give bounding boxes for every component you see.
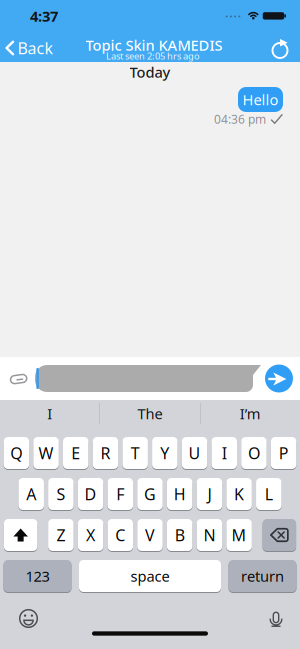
- button[interactable]: E: [63, 437, 88, 469]
- button[interactable]: O: [241, 437, 267, 469]
- button[interactable]: P: [271, 437, 296, 469]
- button[interactable]: space: [79, 560, 221, 592]
- staticText: I’m: [240, 404, 261, 423]
- button[interactable]: Z: [48, 519, 74, 551]
- staticText: Q: [10, 442, 22, 464]
- staticText: Back: [17, 37, 53, 59]
- staticText: K: [234, 483, 244, 505]
- button[interactable]: V: [137, 519, 163, 551]
- button[interactable]: I’m: [201, 400, 300, 426]
- button[interactable]: S: [48, 478, 74, 510]
- staticText: B: [175, 524, 185, 546]
- staticText: Z: [56, 524, 65, 546]
- staticText: A: [26, 483, 36, 505]
- button[interactable]: M: [226, 519, 252, 551]
- button[interactable]: T: [122, 437, 148, 469]
- staticText: N: [203, 524, 215, 546]
- button[interactable]: D: [78, 478, 103, 510]
- staticText: R: [100, 442, 110, 464]
- button[interactable]: W: [33, 437, 59, 469]
- staticText: Y: [160, 442, 169, 464]
- staticText: The: [137, 404, 162, 423]
- staticText: G: [144, 483, 156, 505]
- button[interactable]: I: [211, 437, 237, 469]
- button[interactable]: Emoji: [17, 607, 39, 629]
- staticText: P: [279, 442, 289, 464]
- button[interactable]: Q: [4, 437, 29, 469]
- staticText: L: [265, 483, 273, 505]
- staticText: I: [222, 442, 227, 464]
- button[interactable]: Send: [265, 364, 293, 392]
- staticText: S: [56, 483, 65, 505]
- button[interactable]: A: [18, 478, 44, 510]
- staticText: W: [38, 442, 53, 464]
- staticText: F: [116, 483, 124, 505]
- staticText: space: [130, 566, 169, 586]
- button[interactable]: Shift: [4, 519, 37, 551]
- staticText: H: [174, 483, 186, 505]
- button[interactable]: C: [108, 519, 133, 551]
- staticText: V: [145, 524, 155, 546]
- button[interactable]: J: [197, 478, 222, 510]
- button[interactable]: N: [197, 519, 222, 551]
- button[interactable]: B: [167, 519, 192, 551]
- staticText: Hello: [242, 90, 278, 109]
- button[interactable]: X: [78, 519, 103, 551]
- button[interactable]: Delete: [263, 519, 296, 551]
- button[interactable]: G: [137, 478, 163, 510]
- button[interactable]: The: [100, 400, 200, 426]
- button[interactable]: Message field: [35, 365, 261, 392]
- staticText: I: [47, 404, 52, 423]
- button[interactable]: return: [228, 560, 296, 592]
- button[interactable]: Back: [4, 35, 56, 61]
- staticText: X: [86, 524, 95, 546]
- button[interactable]: Attach file: [7, 371, 30, 387]
- button[interactable]: Dictation: [266, 609, 285, 630]
- staticText: Today: [129, 62, 170, 82]
- button[interactable]: 123: [3, 560, 71, 592]
- staticText: J: [207, 483, 211, 505]
- staticText: Topic Skin KAMEDIS: [85, 35, 222, 55]
- staticText: T: [131, 442, 140, 464]
- button[interactable]: L: [256, 478, 281, 510]
- staticText: E: [71, 442, 80, 464]
- button[interactable]: H: [167, 478, 192, 510]
- button[interactable]: F: [107, 478, 133, 510]
- button[interactable]: K: [226, 478, 252, 510]
- staticText: 04:36 pm: [214, 111, 266, 127]
- button[interactable]: I: [0, 400, 99, 426]
- staticText: 123: [25, 566, 49, 586]
- button[interactable]: Y: [152, 437, 178, 469]
- staticText: C: [115, 524, 125, 546]
- staticText: O: [248, 442, 260, 464]
- staticText: Last seen 2:05 hrs ago: [106, 50, 200, 62]
- button[interactable]: Refresh: [270, 38, 290, 58]
- staticText: return: [241, 566, 284, 586]
- staticText: 4:37: [30, 6, 58, 26]
- staticText: M: [232, 524, 247, 546]
- button[interactable]: U: [182, 437, 207, 469]
- staticText: D: [85, 483, 97, 505]
- button[interactable]: R: [93, 437, 118, 469]
- staticText: U: [188, 442, 200, 464]
